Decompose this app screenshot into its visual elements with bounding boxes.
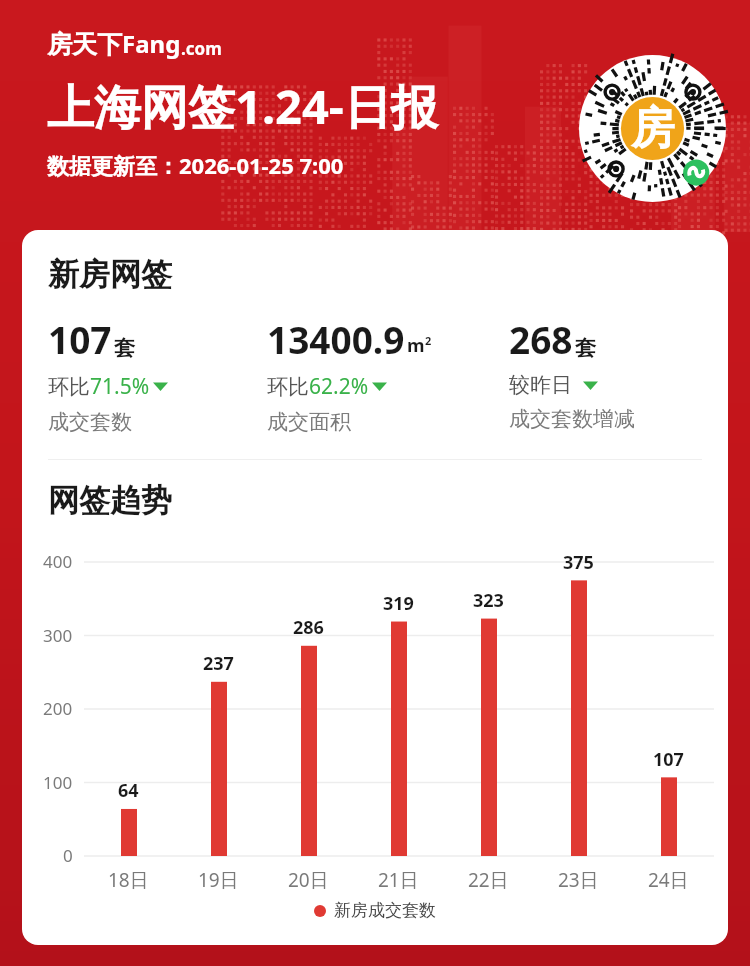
staticText: 237 — [203, 651, 234, 676]
staticText: 286 — [293, 615, 324, 640]
staticText: 套 — [575, 335, 596, 361]
staticText: 成交套数 — [48, 409, 132, 435]
staticText: 较昨日 — [509, 372, 572, 398]
staticText: 成交面积 — [267, 409, 351, 435]
staticText: 400 — [43, 550, 73, 573]
staticText: m — [407, 333, 425, 358]
staticText: 23日 — [558, 867, 599, 893]
staticText: 套 — [114, 335, 135, 361]
staticText: 20日 — [288, 867, 329, 893]
staticText: 375 — [563, 550, 594, 575]
staticText: 323 — [473, 588, 504, 613]
staticText: 数据更新至：2026-01-25 7:00 — [47, 150, 344, 180]
button[interactable]: Scan QR code mini program — [579, 55, 726, 202]
staticText: .com — [181, 37, 222, 60]
staticText: 300 — [43, 624, 73, 647]
staticText: 319 — [383, 591, 414, 616]
button[interactable]: 新房成交套数 — [22, 900, 728, 921]
staticText: 0 — [63, 844, 73, 867]
staticText: 新房成交套数 — [334, 900, 436, 921]
staticText: 房 — [631, 101, 675, 156]
staticText: 新房网签 — [48, 255, 172, 294]
staticText: 100 — [43, 771, 73, 794]
button[interactable]: 268 — [509, 314, 718, 432]
staticText: 107 — [48, 314, 112, 364]
staticText: 房天下 — [47, 29, 122, 60]
staticText: 64 — [118, 778, 139, 803]
staticText: 成交套数增减 — [509, 406, 635, 432]
button[interactable]: 13400.9 — [267, 314, 509, 435]
button[interactable]: 房天下 — [47, 27, 222, 60]
staticText: 200 — [43, 697, 73, 720]
staticText: Fang — [122, 27, 181, 60]
staticText: 18日 — [108, 867, 149, 893]
staticText: 62.2% — [309, 372, 369, 401]
staticText: 环比 — [267, 374, 309, 400]
staticText: 环比 — [48, 374, 90, 400]
staticText: 24日 — [648, 867, 689, 893]
staticText: 21日 — [378, 867, 419, 893]
staticText: 上海网签1.24-日报 — [47, 74, 438, 138]
staticText: 13400.9 — [267, 314, 405, 364]
staticText: 网签趋势 — [48, 481, 172, 520]
staticText: 22日 — [468, 867, 509, 893]
staticText: 19日 — [198, 867, 239, 893]
staticText: 71.5% — [90, 372, 150, 401]
button[interactable]: 107 — [48, 314, 267, 435]
staticText: 107 — [653, 747, 684, 772]
staticText: 268 — [509, 314, 573, 364]
staticText: 2 — [425, 333, 432, 348]
